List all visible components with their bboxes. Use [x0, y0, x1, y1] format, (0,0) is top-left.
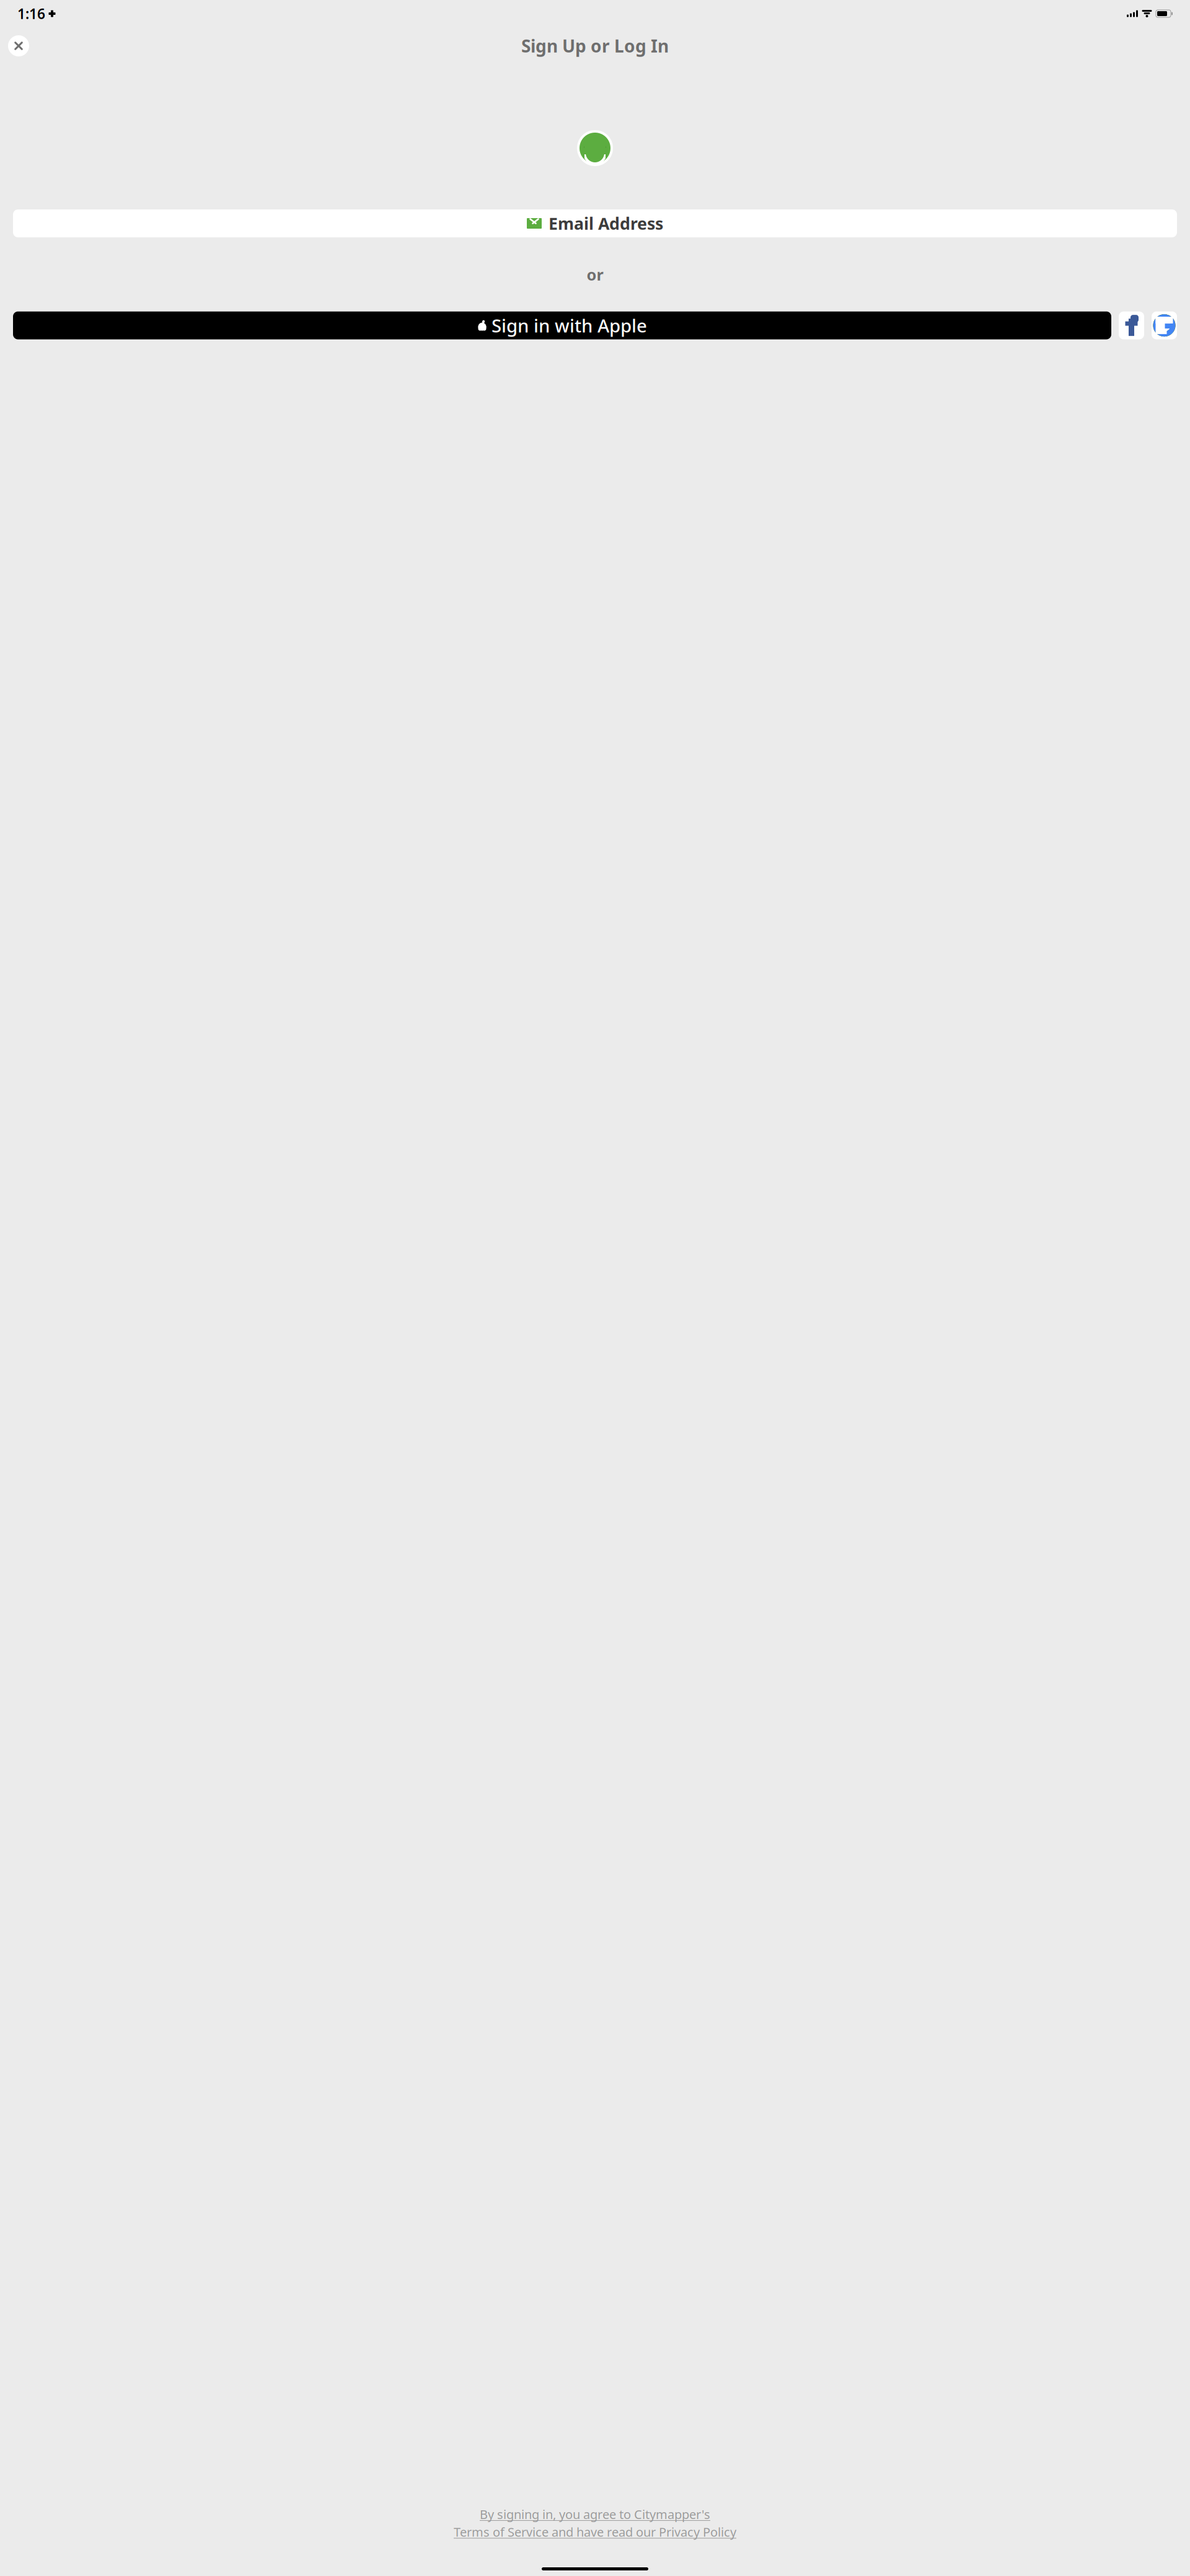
button[interactable]: Sign in with Facebook: [1119, 311, 1144, 339]
staticText: Terms of Service and have read our Priva…: [454, 2524, 736, 2540]
staticText: or: [587, 264, 603, 285]
staticText: 1:16: [17, 4, 45, 23]
button[interactable]: Sign in with Apple: [13, 311, 1111, 339]
button[interactable]: Close: [5, 32, 32, 59]
button[interactable]: Sign in with Google: [1152, 311, 1177, 339]
button[interactable]: Email Address: [13, 209, 1177, 237]
staticText: Sign Up or Log In: [521, 34, 669, 57]
staticText: By signing in, you agree to Citymapper's: [480, 2506, 710, 2522]
staticText: Sign in with Apple: [491, 313, 647, 338]
button[interactable]: By signing in, you agree to Citymapper's: [441, 2503, 749, 2543]
staticText: Email Address: [549, 212, 663, 234]
